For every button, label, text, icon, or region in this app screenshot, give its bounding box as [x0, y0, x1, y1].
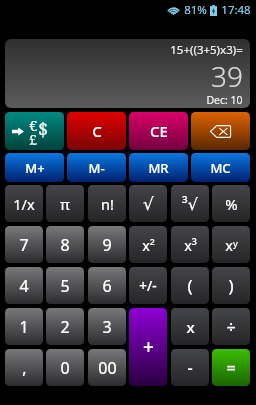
- button[interactable]: 6: [88, 267, 126, 304]
- button[interactable]: MR: [129, 153, 188, 182]
- staticText: €: [29, 115, 38, 135]
- button[interactable]: -: [171, 349, 209, 386]
- staticText: (: [187, 274, 193, 297]
- button[interactable]: M-: [67, 153, 126, 182]
- button[interactable]: +: [129, 308, 167, 386]
- button[interactable]: 00: [88, 349, 126, 386]
- staticText: -: [187, 357, 193, 379]
- button[interactable]: +/-: [129, 267, 167, 304]
- button[interactable]: 7: [5, 226, 43, 263]
- button[interactable]: √: [129, 185, 167, 222]
- button[interactable]: Backspace: [191, 112, 250, 150]
- staticText: xʸ: [225, 235, 238, 255]
- button[interactable]: π: [46, 185, 84, 222]
- staticText: 17:48: [221, 2, 251, 18]
- staticText: ³√: [182, 193, 198, 215]
- button[interactable]: xʸ: [212, 226, 250, 263]
- staticText: x: [186, 317, 195, 337]
- staticText: MR: [148, 159, 169, 177]
- staticText: 0: [60, 357, 70, 379]
- button[interactable]: 8: [46, 226, 84, 263]
- button[interactable]: x²: [129, 226, 167, 263]
- button[interactable]: 5: [46, 267, 84, 304]
- staticText: 81%: [184, 2, 207, 18]
- button[interactable]: x: [171, 308, 209, 345]
- button[interactable]: C: [67, 112, 126, 150]
- staticText: C: [92, 121, 102, 141]
- button[interactable]: x³: [171, 226, 209, 263]
- button[interactable]: MC: [191, 153, 250, 182]
- staticText: ÷: [226, 316, 236, 338]
- button[interactable]: 2: [46, 308, 84, 345]
- button[interactable]: 9: [88, 226, 126, 263]
- staticText: x³: [184, 235, 197, 255]
- staticText: CE: [150, 121, 168, 141]
- button[interactable]: 0: [46, 349, 84, 386]
- staticText: 1/x: [13, 194, 35, 214]
- staticText: 8: [60, 234, 70, 256]
- button[interactable]: ,: [5, 349, 43, 386]
- staticText: 2: [60, 316, 70, 338]
- button[interactable]: 3: [88, 308, 126, 345]
- staticText: 00: [98, 357, 117, 379]
- staticText: ,: [22, 357, 27, 379]
- staticText: £: [29, 129, 38, 149]
- button[interactable]: 1: [5, 308, 43, 345]
- button[interactable]: (: [171, 267, 209, 304]
- button[interactable]: M+: [5, 153, 64, 182]
- staticText: +: [143, 334, 154, 360]
- staticText: M+: [25, 159, 45, 177]
- staticText: 39: [211, 57, 243, 95]
- staticText: 1: [19, 316, 29, 338]
- staticText: =: [226, 357, 236, 379]
- button[interactable]: n!: [88, 185, 126, 222]
- staticText: 4: [19, 275, 29, 297]
- staticText: 6: [102, 275, 112, 297]
- staticText: MC: [210, 159, 231, 177]
- button[interactable]: CE: [129, 112, 188, 150]
- button[interactable]: ): [212, 267, 250, 304]
- button[interactable]: =: [212, 349, 250, 386]
- button[interactable]: ÷: [212, 308, 250, 345]
- button[interactable]: 1/x: [5, 185, 43, 222]
- button[interactable]: 4: [5, 267, 43, 304]
- staticText: n!: [101, 194, 114, 214]
- staticText: 7: [19, 234, 29, 256]
- staticText: √: [143, 194, 154, 214]
- staticText: 3: [102, 316, 112, 338]
- staticText: 15+((3+5)x3)=: [170, 42, 243, 58]
- staticText: π: [60, 194, 70, 214]
- staticText: 9: [102, 234, 112, 256]
- staticText: $: [38, 117, 49, 142]
- staticText: +/-: [139, 277, 157, 295]
- button[interactable]: ³√: [171, 185, 209, 222]
- button[interactable]: Currency converter: [5, 112, 64, 150]
- staticText: M-: [88, 159, 105, 177]
- staticText: Dec: 10: [206, 93, 243, 107]
- staticText: x²: [142, 235, 155, 255]
- button[interactable]: %: [212, 185, 250, 222]
- staticText: 5: [60, 275, 70, 297]
- staticText: ): [228, 274, 234, 297]
- staticText: %: [225, 194, 238, 214]
